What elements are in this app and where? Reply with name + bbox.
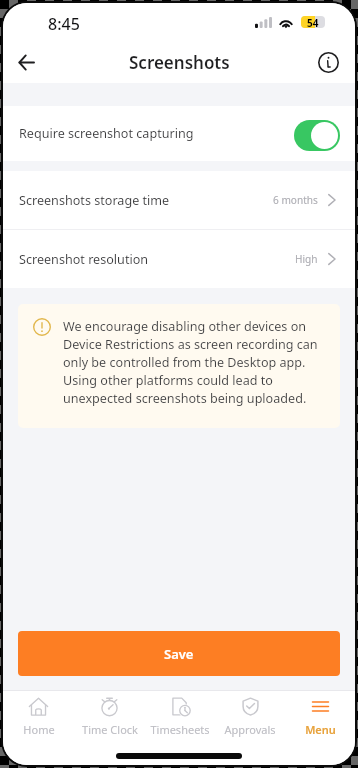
button[interactable]: Save bbox=[18, 631, 340, 676]
staticText: 8:45 bbox=[48, 13, 80, 35]
button[interactable]: Require screenshot capturing bbox=[3, 106, 355, 161]
button[interactable]: Back bbox=[6, 42, 46, 82]
staticText: 54 bbox=[307, 16, 319, 27]
staticText: High bbox=[295, 252, 318, 266]
staticText: We encourage disabling other devices on … bbox=[63, 318, 318, 407]
button[interactable]: Timesheets bbox=[145, 691, 215, 743]
button[interactable]: Home bbox=[3, 691, 74, 743]
staticText: Timesheets bbox=[150, 722, 210, 737]
staticText: Menu bbox=[305, 722, 336, 737]
staticText: Home bbox=[23, 722, 55, 737]
staticText: Approvals bbox=[224, 722, 276, 737]
button[interactable]: Require screenshot capturing toggle bbox=[294, 120, 340, 151]
staticText: 6 months bbox=[273, 193, 318, 207]
staticText: Screenshot resolution bbox=[19, 251, 149, 268]
button[interactable]: Screenshot resolution bbox=[3, 230, 355, 288]
button[interactable]: Approvals bbox=[215, 691, 285, 743]
button[interactable]: Menu bbox=[285, 691, 355, 743]
staticText: Save bbox=[164, 645, 194, 663]
staticText: Screenshots bbox=[129, 51, 230, 74]
staticText: Screenshots storage time bbox=[19, 192, 170, 209]
button[interactable]: Screenshots storage time bbox=[3, 171, 355, 229]
staticText: Time Clock bbox=[82, 722, 138, 737]
button[interactable]: Info bbox=[308, 42, 348, 82]
staticText: Require screenshot capturing bbox=[19, 125, 194, 142]
button[interactable]: Time Clock bbox=[74, 691, 145, 743]
